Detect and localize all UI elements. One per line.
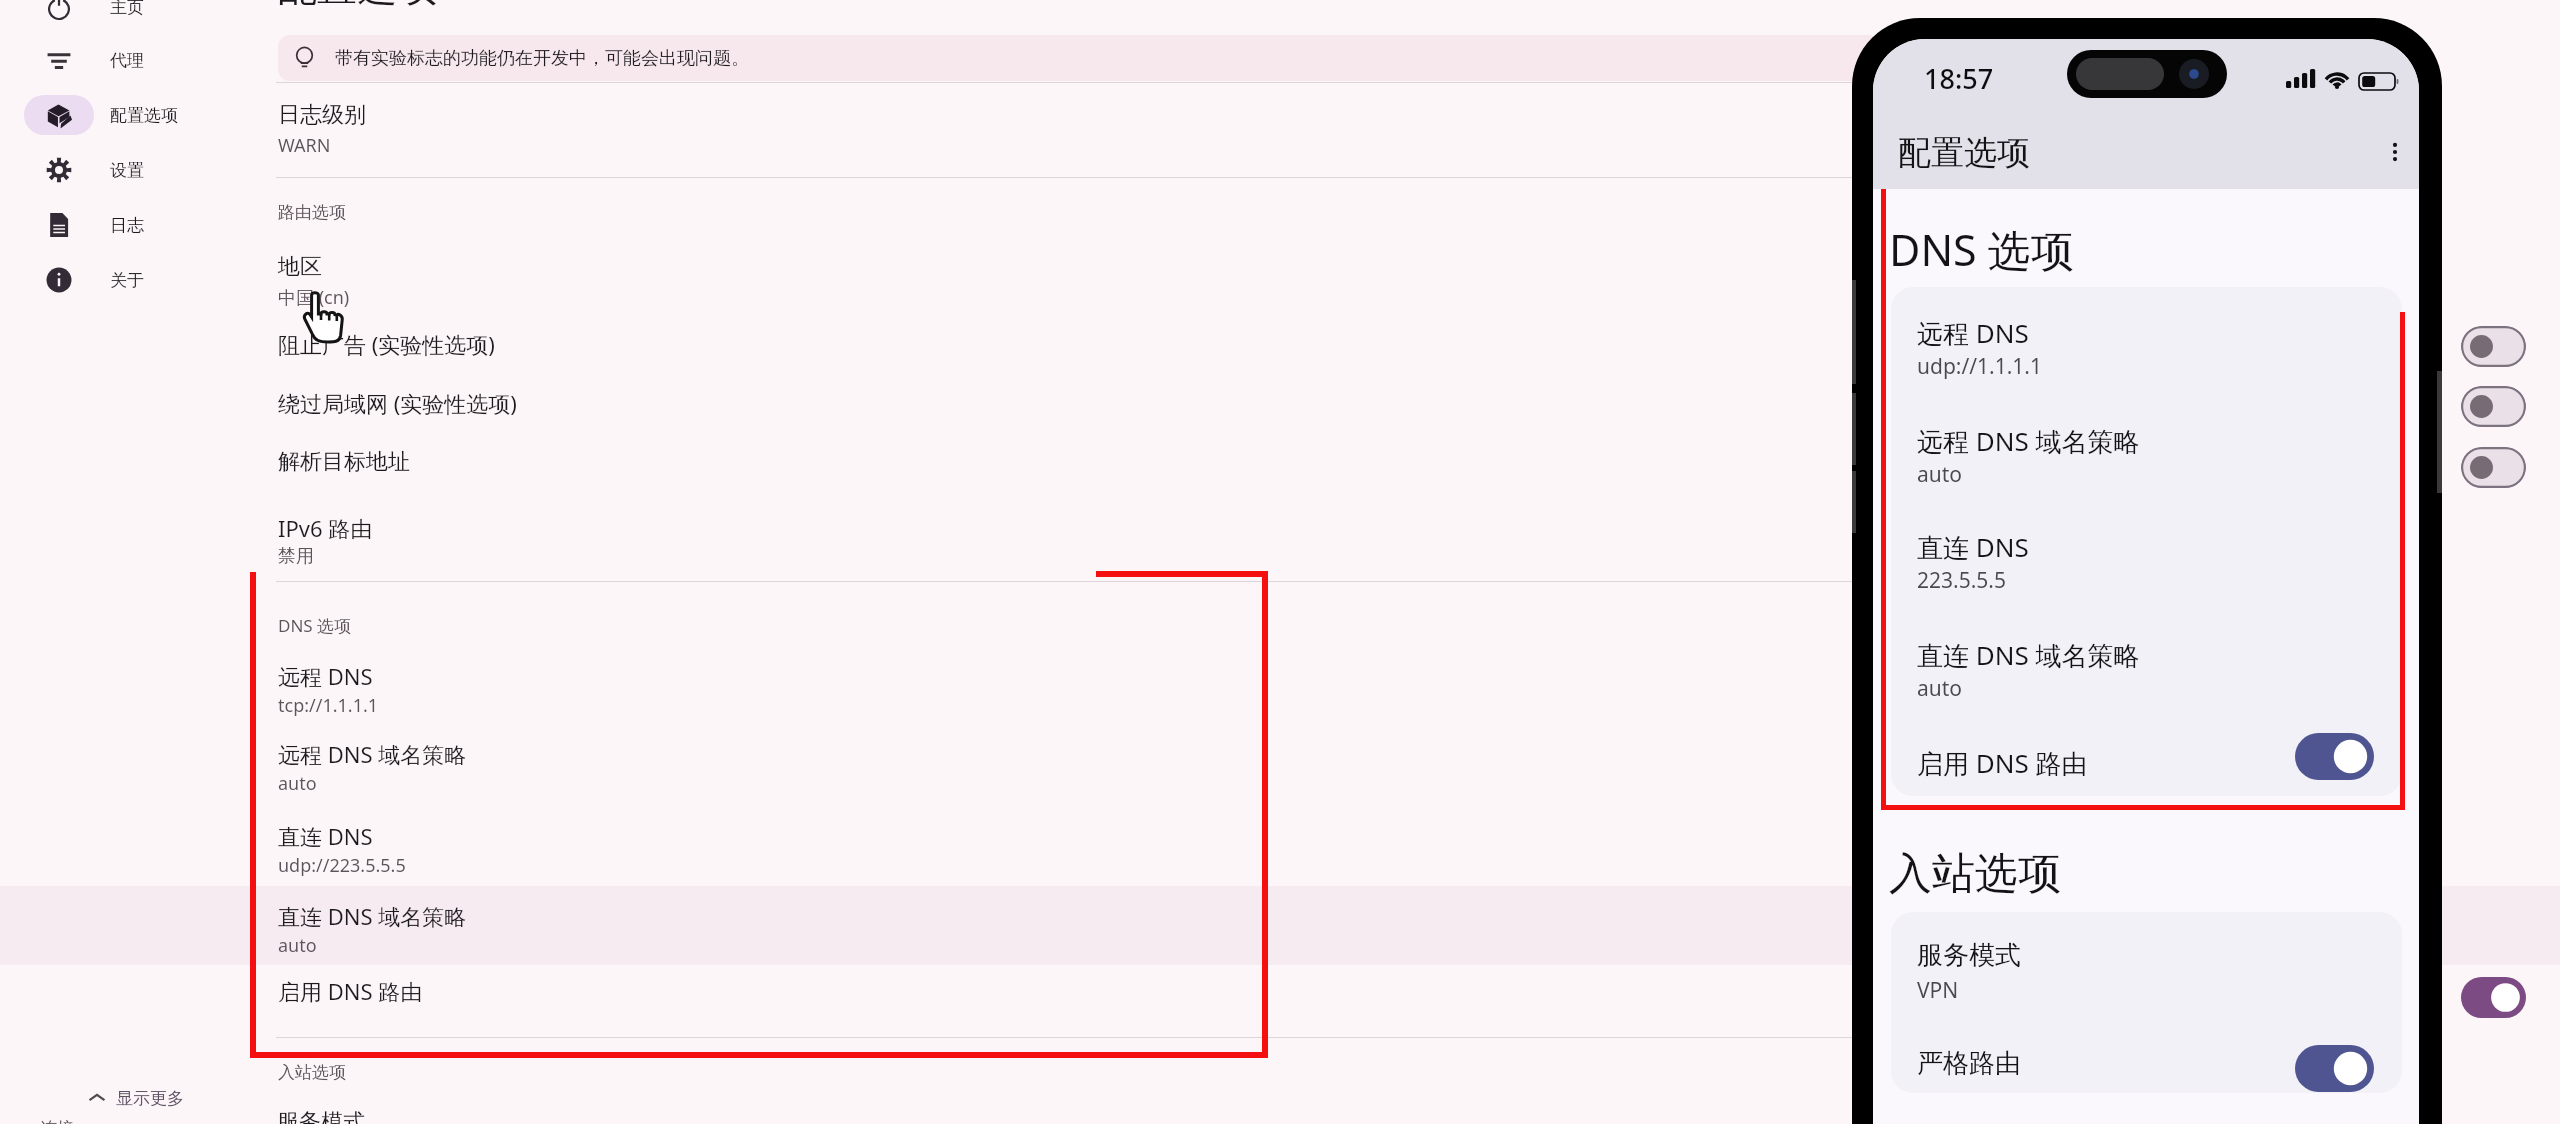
button[interactable]: 地区: [0, 239, 2560, 315]
button[interactable]: 直连 DNS 域名策略: [0, 887, 2560, 963]
button[interactable]: Toggle: [2295, 733, 2374, 780]
button[interactable]: 直连 DNS: [0, 807, 2560, 883]
staticText: 直连 DNS 域名策略: [278, 901, 467, 931]
button[interactable]: 日志: [24, 204, 234, 246]
staticText: 主页: [110, 0, 144, 18]
staticText: WARN: [278, 133, 331, 158]
button[interactable]: 代理: [24, 39, 234, 81]
button[interactable]: 日志级别: [0, 87, 2560, 163]
staticText: 直连 DNS 域名策略: [1917, 637, 2140, 673]
staticText: auto: [278, 771, 317, 796]
staticText: 启用 DNS 路由: [1917, 745, 2088, 781]
button[interactable]: 配置选项: [24, 94, 234, 136]
staticText: 远程 DNS: [278, 661, 373, 691]
staticText: 中国 (cn): [278, 285, 350, 310]
button[interactable]: 主页: [24, 0, 234, 28]
button[interactable]: 启用 DNS 路由: [0, 964, 2560, 1018]
button[interactable]: Toggle: [2461, 447, 2526, 488]
staticText: 远程 DNS 域名策略: [278, 739, 467, 769]
staticText: 服务模式: [277, 1108, 365, 1124]
staticText: auto: [1917, 674, 1963, 703]
staticText: 路由选项: [278, 202, 346, 223]
staticText: tcp://1.1.1.1: [278, 693, 379, 718]
button[interactable]: [0, 886, 2560, 965]
staticText: 严格路由: [1917, 1047, 2021, 1080]
staticText: DNS 选项: [278, 614, 352, 637]
button[interactable]: 阻止广告 (实验性选项): [0, 317, 2560, 371]
button[interactable]: 绕过局域网 (实验性选项): [0, 376, 2560, 430]
staticText: auto: [1917, 460, 1963, 489]
staticText: 连接: [40, 1118, 74, 1124]
staticText: 18:57: [1924, 60, 1994, 97]
staticText: 关于: [110, 270, 144, 291]
button[interactable]: 显示更多: [86, 1083, 184, 1113]
staticText: 223.5.5.5: [1917, 566, 2006, 595]
button[interactable]: 严格路由: [1891, 1029, 2402, 1093]
staticText: 解析目标地址: [278, 448, 410, 476]
staticText: 日志级别: [278, 101, 366, 129]
staticText: 入站选项: [278, 1062, 346, 1083]
staticText: auto: [278, 933, 317, 958]
button[interactable]: Toggle: [2461, 977, 2526, 1018]
staticText: 绕过局域网 (实验性选项): [278, 388, 517, 418]
staticText: 入站选项: [1889, 847, 2061, 901]
button[interactable]: 解析目标地址: [0, 436, 2560, 490]
staticText: 远程 DNS: [1917, 315, 2029, 351]
button[interactable]: 关于: [24, 259, 234, 301]
staticText: 设置: [110, 160, 144, 181]
button[interactable]: 服务模式: [1891, 929, 2402, 1015]
staticText: 服务模式: [1917, 939, 2021, 972]
staticText: VPN: [1917, 976, 1959, 1005]
staticText: 显示更多: [116, 1088, 184, 1109]
button[interactable]: 远程 DNS: [0, 647, 2560, 723]
staticText: 阻止广告 (实验性选项): [278, 329, 495, 359]
staticText: 地区: [278, 253, 322, 281]
staticText: 配置选项: [110, 105, 178, 126]
staticText: 带有实验标志的功能仍在开发中，可能会出现问题。: [335, 47, 749, 70]
button[interactable]: Toggle: [2461, 386, 2526, 427]
button[interactable]: 远程 DNS 域名策略: [0, 725, 2560, 801]
staticText: 直连 DNS: [278, 821, 373, 851]
staticText: IPv6 路由: [278, 513, 373, 543]
button[interactable]: Toggle: [2295, 1045, 2374, 1092]
staticText: 禁用: [278, 545, 314, 568]
staticText: 代理: [110, 50, 144, 71]
staticText: 配置选项: [277, 0, 437, 11]
button[interactable]: 设置: [24, 149, 234, 191]
button[interactable]: 直连 DNS 域名策略: [1891, 627, 2402, 713]
staticText: 启用 DNS 路由: [278, 976, 423, 1006]
button[interactable]: 直连 DNS: [1891, 519, 2402, 605]
button[interactable]: Toggle: [2461, 326, 2526, 367]
button[interactable]: 远程 DNS 域名策略: [1891, 413, 2402, 499]
button[interactable]: IPv6 路由: [0, 499, 2560, 575]
staticText: DNS 选项: [1889, 220, 2074, 279]
button[interactable]: 远程 DNS: [1891, 305, 2402, 391]
staticText: udp://1.1.1.1: [1917, 352, 2042, 381]
button[interactable]: 带有实验标志的功能仍在开发中，可能会出现问题。: [278, 35, 1880, 81]
button[interactable]: More options: [2378, 135, 2412, 169]
staticText: 日志: [110, 215, 144, 236]
staticText: 直连 DNS: [1917, 529, 2029, 565]
staticText: 配置选项: [1898, 132, 2030, 174]
staticText: udp://223.5.5.5: [278, 853, 406, 878]
staticText: 远程 DNS 域名策略: [1917, 423, 2140, 459]
button[interactable]: 启用 DNS 路由: [1891, 727, 2402, 796]
